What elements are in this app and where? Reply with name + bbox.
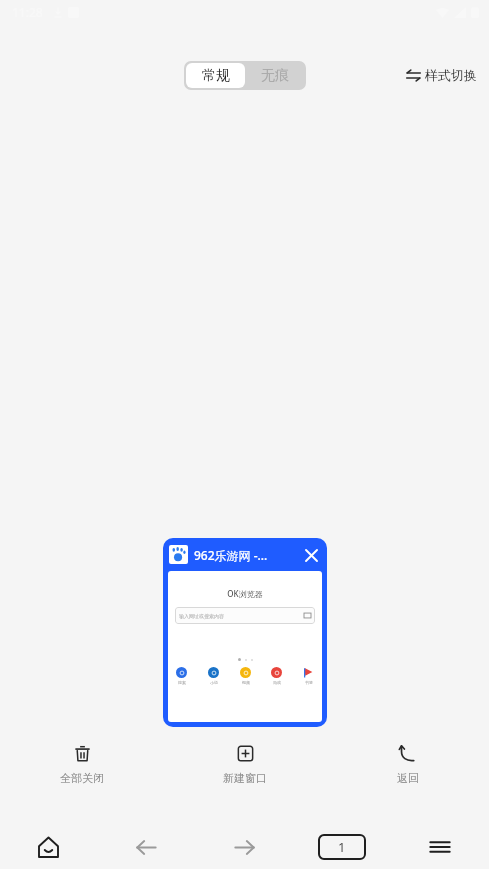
- staticText: 新建窗口: [223, 771, 267, 785]
- staticText: 常规: [202, 67, 230, 85]
- button[interactable]: 视频: [240, 667, 251, 685]
- staticText: 游戏: [273, 680, 281, 685]
- button[interactable]: 小说: [208, 667, 219, 685]
- button[interactable]: 游戏: [271, 667, 282, 685]
- button[interactable]: Forward: [195, 825, 293, 869]
- button[interactable]: Close tab: [301, 545, 321, 565]
- button[interactable]: 常规: [186, 63, 245, 88]
- button[interactable]: Menu: [391, 825, 489, 869]
- button[interactable]: 书签: [303, 667, 314, 685]
- staticText: 样式切换: [425, 67, 477, 83]
- staticText: 962乐游网 -...: [194, 547, 301, 563]
- button[interactable]: 新建窗口: [163, 738, 326, 785]
- button[interactable]: 无痕: [245, 63, 304, 88]
- staticText: 搜索: [178, 680, 186, 685]
- staticText: 1: [338, 838, 346, 856]
- button[interactable]: 全部关闭: [0, 738, 163, 785]
- button[interactable]: 输入网址或搜索内容: [175, 607, 315, 624]
- button[interactable]: Tabs: [293, 825, 391, 869]
- staticText: 书签: [305, 680, 313, 685]
- staticText: 视频: [242, 680, 250, 685]
- button[interactable]: Back: [97, 825, 195, 869]
- staticText: 输入网址或搜索内容: [179, 613, 304, 619]
- staticText: 无痕: [261, 67, 289, 85]
- button[interactable]: Home: [0, 825, 97, 869]
- button[interactable]: 搜索: [176, 667, 187, 685]
- button[interactable]: 962乐游网 -...: [163, 538, 327, 727]
- button[interactable]: 返回: [326, 738, 489, 785]
- staticText: OK浏览器: [168, 588, 322, 599]
- staticText: 小说: [210, 680, 218, 685]
- staticText: 全部关闭: [60, 771, 104, 785]
- staticText: 返回: [397, 771, 419, 785]
- button[interactable]: 样式切换: [402, 63, 481, 87]
